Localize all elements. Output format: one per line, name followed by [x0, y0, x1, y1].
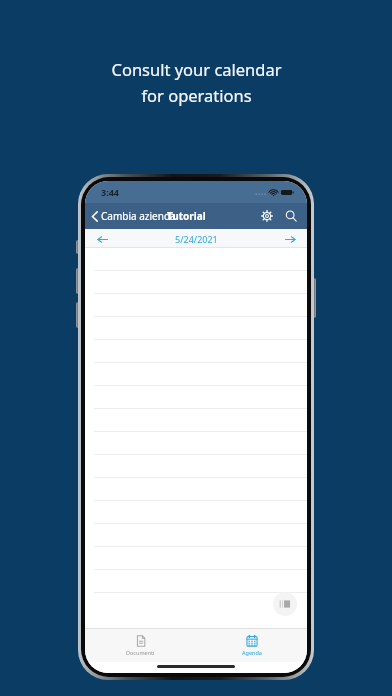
button[interactable]: Previous day — [93, 230, 111, 248]
staticText: Consult your calendar — [111, 58, 282, 80]
staticText: Documenti — [126, 649, 155, 656]
button[interactable]: Next day — [281, 230, 299, 248]
button[interactable]: Search — [283, 208, 299, 224]
staticText: 5/24/2021 — [175, 233, 218, 245]
button[interactable]: Agenda — [196, 628, 307, 662]
staticText: 3:44 — [101, 186, 119, 198]
button[interactable]: Settings — [259, 208, 275, 224]
staticText: Cambia azienda — [101, 209, 176, 223]
staticText: Agenda — [242, 649, 262, 656]
button[interactable]: Scan barcode — [273, 592, 297, 616]
button[interactable]: Cambia azienda — [91, 209, 176, 223]
button[interactable]: Documenti — [85, 628, 196, 662]
staticText: for operations — [141, 84, 252, 106]
staticText: Tutorial — [167, 209, 206, 223]
